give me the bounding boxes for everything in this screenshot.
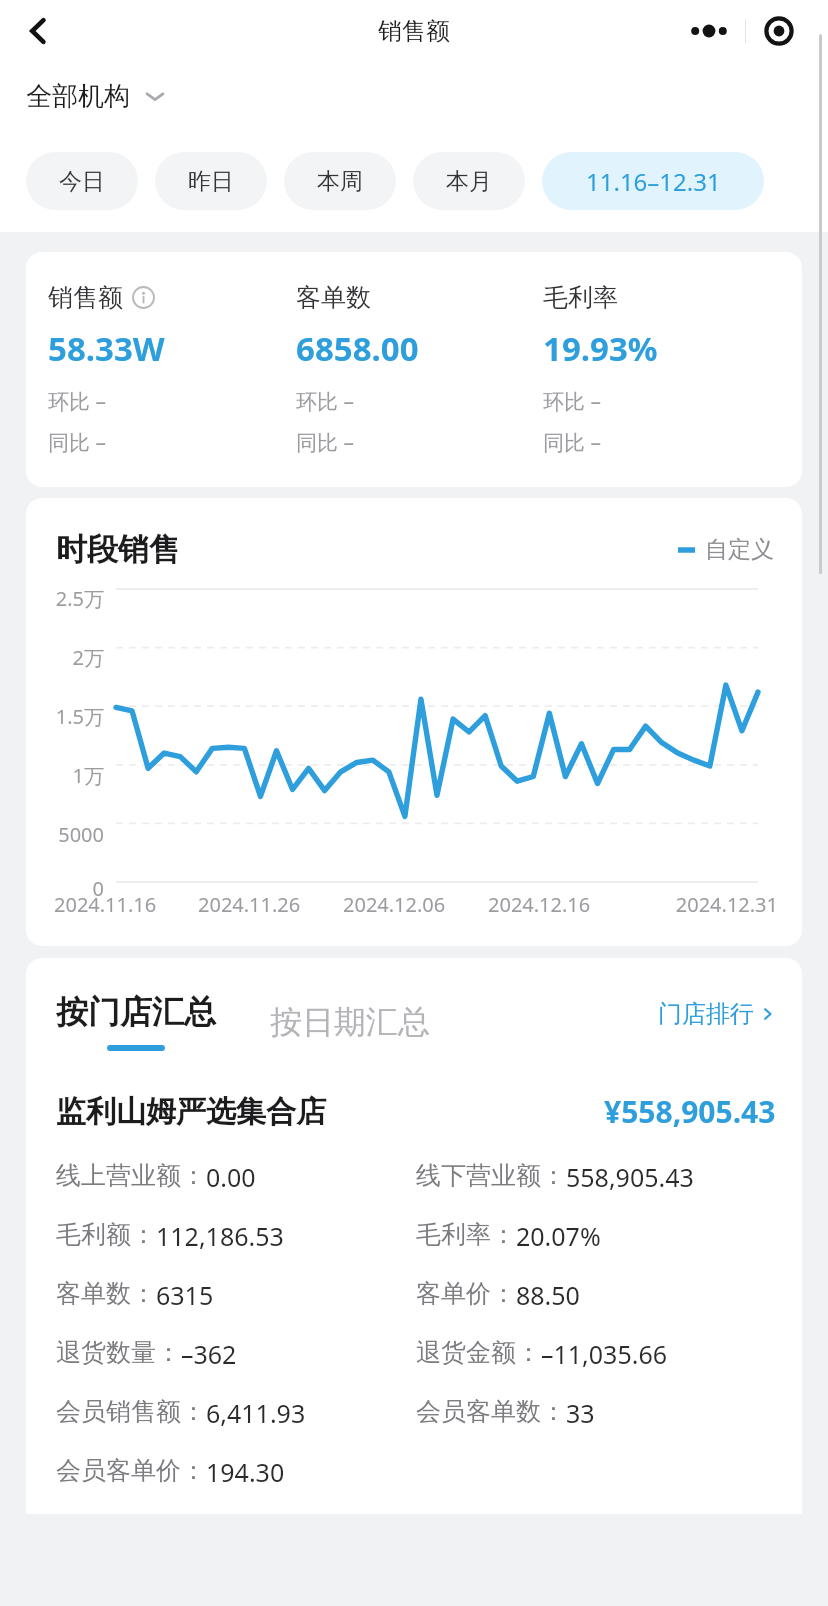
button[interactable]: 按日期汇总: [270, 1002, 430, 1042]
staticText: 会员销售额：: [56, 1396, 206, 1427]
button[interactable]: 本周: [284, 152, 396, 210]
staticText: 按日期汇总: [270, 1002, 430, 1042]
staticText: 门店排行: [658, 999, 754, 1029]
staticText: 2024.11.16: [54, 891, 198, 918]
staticText: 5000: [26, 821, 104, 848]
staticText: 客单数: [296, 282, 371, 313]
button[interactable]: Close: [746, 11, 812, 51]
staticText: 线上营业额：: [56, 1160, 206, 1191]
button[interactable]: 昨日: [155, 152, 267, 210]
staticText: 退货数量：: [56, 1337, 181, 1368]
staticText: 按门店汇总: [56, 992, 216, 1032]
button[interactable]: 本月: [413, 152, 525, 210]
staticText: 本周: [317, 167, 363, 196]
staticText: 环比 –: [296, 387, 354, 416]
staticText: 监利山姆严选集合店: [56, 1093, 326, 1131]
staticText: 同比 –: [543, 428, 601, 457]
staticText: 2.5万: [26, 585, 104, 612]
staticText: 88.50: [516, 1278, 580, 1312]
staticText: 112,186.53: [156, 1219, 284, 1253]
staticText: 会员客单价：: [56, 1455, 206, 1486]
staticText: 558,905.43: [566, 1160, 694, 1194]
staticText: 毛利率: [543, 282, 618, 313]
staticText: 毛利额：: [56, 1219, 156, 1250]
button[interactable]: More: [673, 11, 745, 51]
staticText: 2024.12.31: [633, 891, 778, 918]
staticText: 时段销售: [56, 530, 180, 569]
staticText: 本月: [446, 167, 492, 196]
button[interactable]: 自定义: [678, 535, 774, 564]
staticText: 2024.12.06: [343, 891, 488, 918]
staticText: 今日: [59, 167, 105, 196]
staticText: 全部机构: [26, 80, 130, 113]
staticText: 6315: [156, 1278, 214, 1312]
staticText: 6,411.93: [206, 1396, 306, 1430]
staticText: 2024.11.26: [198, 891, 343, 918]
staticText: 线下营业额：: [416, 1160, 566, 1191]
button[interactable]: 门店排行: [658, 1007, 776, 1037]
staticText: ¥558,905.43: [604, 1091, 776, 1132]
staticText: 销售额: [48, 282, 123, 313]
staticText: 会员客单数：: [416, 1396, 566, 1427]
button[interactable]: 全部机构: [0, 62, 828, 130]
staticText: 2万: [26, 644, 104, 671]
staticText: 58.33W: [48, 326, 165, 371]
staticText: 33: [566, 1396, 595, 1430]
staticText: 20.07%: [516, 1219, 601, 1253]
staticText: 19.93%: [543, 326, 658, 371]
staticText: 同比 –: [296, 428, 354, 457]
button[interactable]: 按门店汇总: [56, 992, 216, 1051]
staticText: 客单数：: [56, 1278, 156, 1309]
staticText: 同比 –: [48, 428, 106, 457]
staticText: –362: [181, 1337, 237, 1371]
staticText: 退货金额：: [416, 1337, 541, 1368]
staticText: 环比 –: [48, 387, 106, 416]
button[interactable]: 11.16–12.31: [542, 152, 764, 210]
staticText: 自定义: [705, 535, 774, 564]
button[interactable]: 今日: [26, 152, 138, 210]
staticText: –11,035.66: [541, 1337, 668, 1371]
staticText: 11.16–12.31: [586, 165, 721, 198]
staticText: 环比 –: [543, 387, 601, 416]
staticText: 昨日: [188, 167, 234, 196]
staticText: 毛利率：: [416, 1219, 516, 1250]
staticText: 2024.12.16: [488, 891, 633, 918]
staticText: 销售额: [378, 16, 450, 46]
staticText: 1万: [26, 762, 104, 789]
staticText: 0.00: [206, 1160, 256, 1194]
staticText: 194.30: [206, 1455, 285, 1489]
staticText: 0: [26, 875, 104, 902]
staticText: 客单价：: [416, 1278, 516, 1309]
button[interactable]: Back: [12, 5, 64, 57]
staticText: 6858.00: [296, 326, 419, 371]
staticText: 1.5万: [26, 703, 104, 730]
